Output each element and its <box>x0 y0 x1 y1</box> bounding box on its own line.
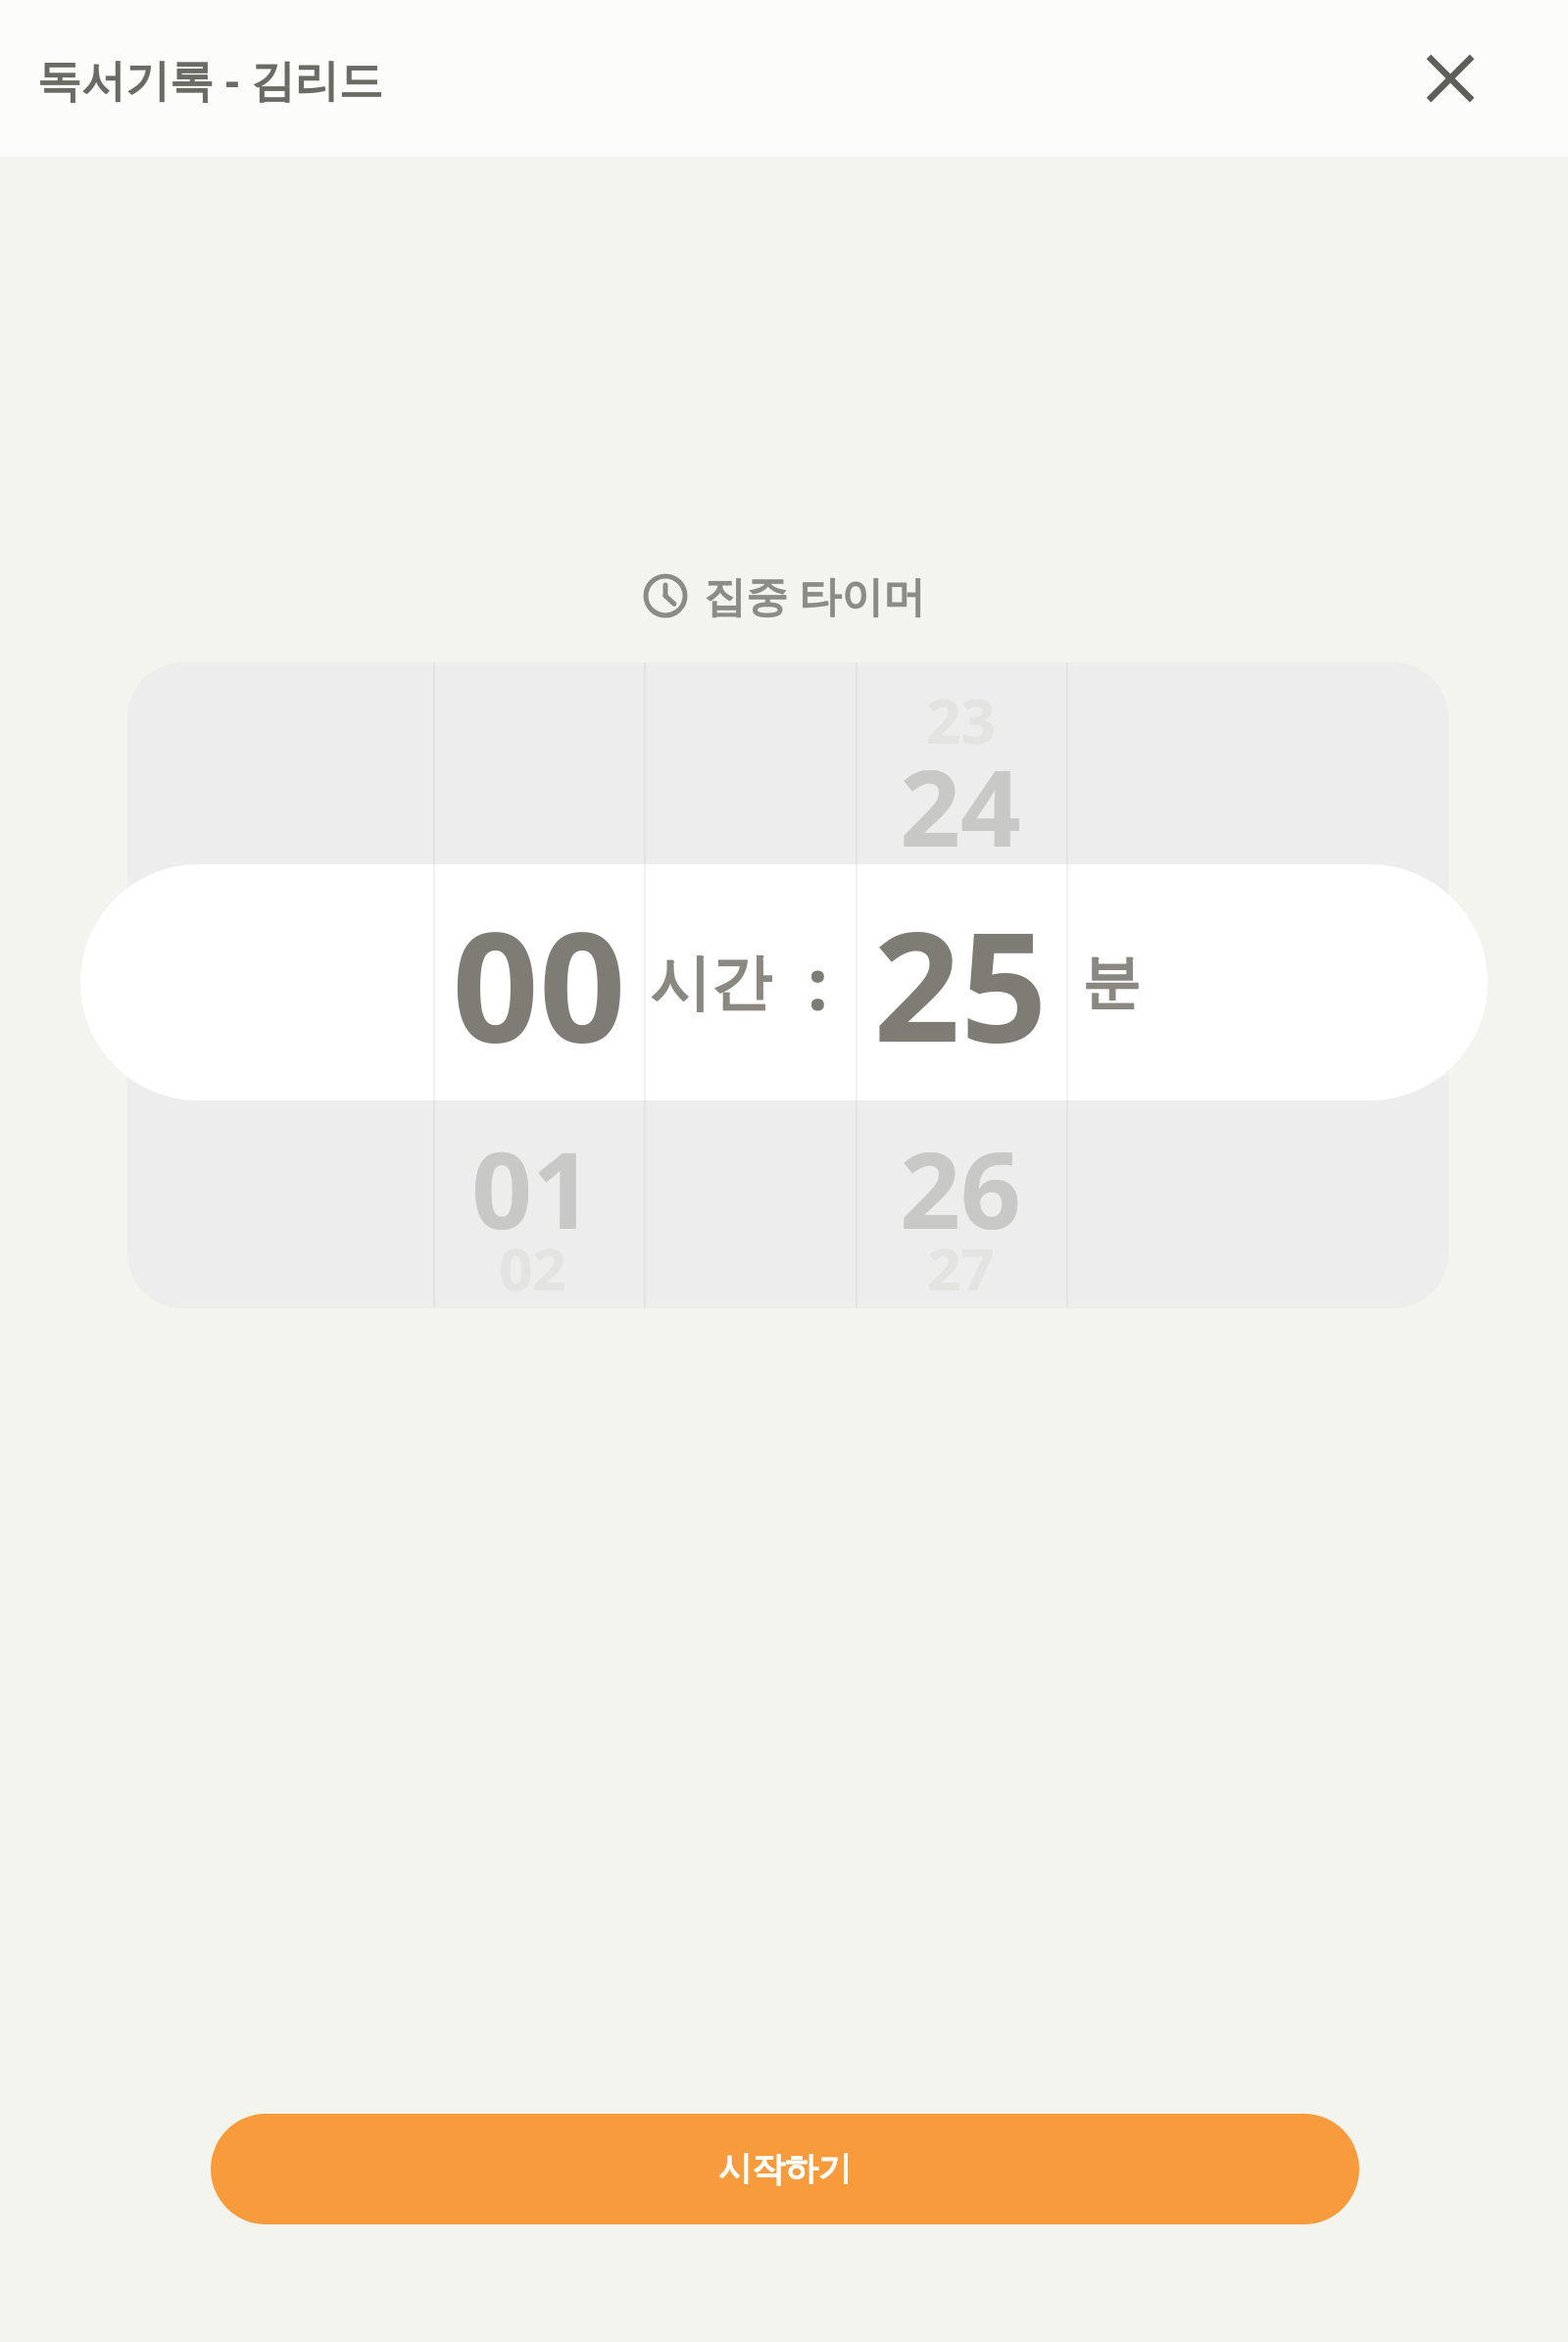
staticText: 00 <box>452 879 626 1086</box>
staticText: 23 <box>926 679 996 761</box>
staticText: 27 <box>927 1228 995 1308</box>
staticText: 01 <box>471 1116 593 1260</box>
staticText: 시간 <box>650 945 771 1021</box>
staticText: 독서기록 - 김리드 <box>37 49 383 109</box>
staticText: 집중 타이머 <box>704 566 926 624</box>
staticText: 분 <box>1082 946 1141 1020</box>
staticText: 시작하기 <box>718 2148 852 2190</box>
staticText: 24 <box>900 734 1021 878</box>
staticText: 25 <box>873 879 1048 1086</box>
button[interactable]: 시작하기 <box>211 2114 1359 2224</box>
staticText: : <box>808 933 828 1032</box>
staticText: 02 <box>499 1228 566 1308</box>
button[interactable]: 독서기록 - 김리드 <box>37 49 383 109</box>
button[interactable]: 00 <box>80 864 1488 1100</box>
button[interactable]: Close <box>1405 33 1495 123</box>
staticText: 26 <box>900 1116 1021 1260</box>
